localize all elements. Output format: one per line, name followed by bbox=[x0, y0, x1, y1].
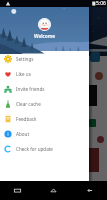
button[interactable]: Recent apps bbox=[11, 184, 24, 197]
staticText: About bbox=[16, 131, 30, 137]
button[interactable]: Back bbox=[83, 184, 96, 197]
button[interactable]: Home bbox=[47, 184, 60, 197]
button[interactable]: Check for update bbox=[0, 141, 89, 156]
button[interactable]: About bbox=[0, 126, 89, 141]
staticText: Welcome bbox=[34, 33, 56, 40]
button[interactable]: Invite friends bbox=[0, 81, 89, 96]
staticText: 5:06 bbox=[96, 0, 106, 7]
button[interactable]: Clear cache bbox=[0, 96, 89, 111]
staticText: Like us bbox=[16, 71, 31, 77]
staticText: Clear cache bbox=[16, 101, 41, 107]
button[interactable]: Like us bbox=[0, 66, 89, 81]
staticText: Settings bbox=[16, 56, 34, 62]
staticText: Check for update bbox=[16, 146, 53, 152]
staticText: Feedback bbox=[16, 116, 37, 122]
staticText: Invite friends bbox=[16, 86, 45, 92]
button[interactable]: Feedback bbox=[0, 111, 89, 126]
button[interactable]: Settings bbox=[0, 51, 89, 66]
